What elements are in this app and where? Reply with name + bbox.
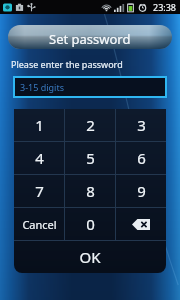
button[interactable]: Cancel: [14, 208, 64, 240]
staticText: 9: [137, 181, 146, 201]
button[interactable]: 1: [14, 109, 64, 141]
button[interactable]: 7: [14, 175, 64, 207]
staticText: Cancel: [22, 217, 57, 232]
staticText: OK: [79, 247, 101, 267]
staticText: 3: [137, 115, 146, 135]
button[interactable]: 3-15 digits: [13, 76, 167, 98]
staticText: 5: [86, 148, 95, 168]
button[interactable]: 8: [65, 175, 115, 207]
staticText: 8: [86, 181, 95, 201]
button[interactable]: Backspace: [116, 208, 166, 240]
button[interactable]: 4: [14, 142, 64, 174]
button[interactable]: 5: [65, 142, 115, 174]
button[interactable]: 9: [116, 175, 166, 207]
button[interactable]: 6: [116, 142, 166, 174]
staticText: 0: [86, 214, 95, 234]
button[interactable]: 2: [65, 109, 115, 141]
staticText: 2: [86, 115, 95, 135]
staticText: 7: [35, 181, 44, 201]
staticText: 23:38: [153, 1, 177, 13]
staticText: 1: [35, 115, 44, 135]
button[interactable]: Set password: [8, 25, 172, 49]
staticText: 4: [35, 148, 44, 168]
button[interactable]: OK: [14, 241, 166, 273]
button[interactable]: 3: [116, 109, 166, 141]
staticText: 3-15 digits: [20, 81, 64, 93]
staticText: 6: [137, 148, 146, 168]
button[interactable]: 0: [65, 208, 115, 240]
staticText: Set password: [49, 30, 131, 48]
staticText: Please enter the password: [11, 58, 123, 70]
